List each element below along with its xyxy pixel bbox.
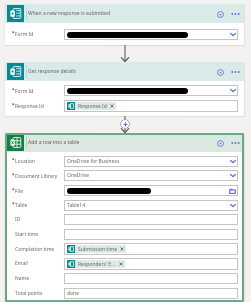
button[interactable]: Open dropdown <box>227 156 238 167</box>
staticText: Submission time <box>78 246 117 253</box>
staticText: Responders' E... <box>78 261 116 268</box>
button[interactable]: Help <box>215 138 225 148</box>
button[interactable]: done <box>64 288 238 299</box>
staticText: Name <box>15 275 30 282</box>
button[interactable]: Open dropdown <box>227 85 238 96</box>
staticText: Add a row into a table <box>28 139 80 146</box>
staticText: Response Id <box>15 103 44 110</box>
button[interactable]: Open dropdown <box>227 170 238 181</box>
button[interactable]: Open dropdown <box>227 200 238 211</box>
staticText: Email <box>15 260 28 267</box>
staticText: Document Library <box>15 173 58 180</box>
button[interactable]: Table14 <box>64 200 238 211</box>
staticText: Table14 <box>67 202 86 209</box>
button[interactable]: Help <box>215 67 225 77</box>
staticText: OneDrive <box>67 172 90 179</box>
button[interactable]: More commands <box>230 66 241 77</box>
staticText: When a new response is submitted <box>28 10 110 17</box>
button[interactable]: OneDrive for Business <box>64 156 238 167</box>
button[interactable]: When a new response is submitted <box>5 4 244 23</box>
staticText: File <box>15 188 23 195</box>
staticText: Location <box>15 158 36 165</box>
button[interactable]: Open dropdown <box>227 29 238 40</box>
staticText: Table <box>15 202 28 209</box>
staticText: OneDrive for Business <box>67 158 120 165</box>
staticText: done <box>67 290 80 297</box>
button[interactable]: Submission time <box>67 245 126 253</box>
button[interactable]: More commands <box>230 137 241 148</box>
staticText: ID <box>15 216 21 223</box>
staticText: Get response details <box>28 68 76 75</box>
button[interactable]: OneDrive <box>64 170 238 181</box>
button[interactable]: Browse files <box>64 185 238 196</box>
button[interactable]: Add a row into a table <box>5 133 244 152</box>
button[interactable]: Insert a new step <box>120 119 130 129</box>
staticText: Form Id <box>15 31 34 38</box>
button[interactable]: Response Id <box>67 102 116 110</box>
button[interactable]: Responders' E... <box>67 260 125 268</box>
staticText: Form Id <box>15 88 34 95</box>
button[interactable] <box>64 273 238 284</box>
staticText: Completion time <box>15 246 55 253</box>
button[interactable]: Open dropdown <box>64 29 238 40</box>
button[interactable] <box>64 229 238 240</box>
button[interactable]: Browse files <box>227 185 238 196</box>
staticText: Total points <box>15 290 43 297</box>
staticText: Response Id <box>78 103 107 110</box>
staticText: Start time <box>15 231 39 238</box>
button[interactable]: Responders' E... <box>64 258 238 270</box>
button[interactable]: Open dropdown <box>64 85 238 96</box>
button[interactable]: Help <box>215 9 225 19</box>
button[interactable]: Submission time <box>64 243 238 255</box>
button[interactable]: More commands <box>230 8 241 19</box>
button[interactable] <box>64 214 238 225</box>
button[interactable]: Response Id <box>64 100 238 112</box>
button[interactable]: Get response details <box>5 62 244 81</box>
